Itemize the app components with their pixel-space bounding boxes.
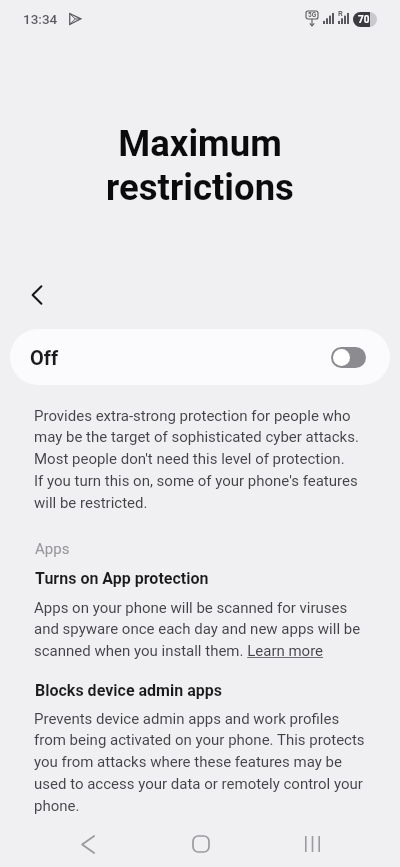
button[interactable]: Off	[10, 329, 390, 385]
button[interactable]: Home	[179, 822, 223, 866]
button[interactable]: Learn more	[240, 641, 324, 660]
staticText: Maximum restrictions	[16, 122, 384, 209]
staticText: 70	[358, 14, 370, 26]
staticText: Prevents device admin apps and work prof…	[34, 710, 365, 815]
staticText: Apps	[35, 540, 70, 558]
staticText: 13:34	[23, 11, 58, 27]
staticText: Provides extra-strong protection for peo…	[34, 407, 359, 512]
staticText: Apps on your phone will be scanned for v…	[34, 599, 361, 660]
staticText: Blocks device admin apps	[35, 681, 222, 700]
button[interactable]: Back	[66, 822, 110, 866]
staticText: R	[338, 9, 343, 18]
staticText: Off	[30, 346, 59, 369]
staticText: 5G	[308, 11, 317, 19]
staticText: Turns on App protection	[35, 569, 209, 588]
button[interactable]: Back	[18, 276, 56, 314]
button[interactable]: Recent apps	[290, 822, 334, 866]
